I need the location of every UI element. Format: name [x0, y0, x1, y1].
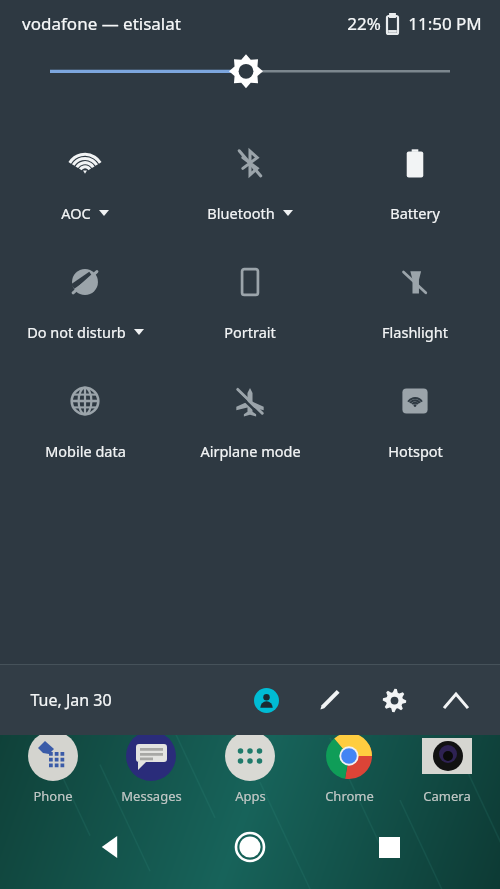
staticText: Do not disturb	[27, 322, 126, 342]
button[interactable]: Messages	[105, 731, 197, 805]
staticText: Tue, Jan 30	[30, 689, 112, 711]
staticText: 22%	[347, 12, 381, 35]
staticText: Apps	[235, 787, 266, 805]
button[interactable]: Back	[83, 819, 139, 875]
staticText: Airplane mode	[200, 441, 301, 461]
staticText: Flashlight	[382, 322, 448, 342]
button[interactable]: Settings	[372, 678, 416, 722]
staticText: 11:50 PM	[408, 12, 482, 35]
button[interactable]: Edit	[308, 678, 352, 722]
staticText: Bluetooth	[207, 203, 275, 223]
button[interactable]: Phone	[7, 731, 99, 805]
button[interactable]: Battery	[335, 140, 495, 223]
button[interactable]: Apps	[204, 731, 296, 805]
button[interactable]: Do not disturb	[5, 259, 165, 342]
staticText: Battery	[390, 203, 440, 223]
staticText: Chrome	[325, 787, 374, 805]
button[interactable]: Airplane mode	[170, 378, 330, 461]
button[interactable]: Hotspot	[335, 378, 495, 461]
staticText: vodafone — etisalat	[22, 12, 181, 35]
button[interactable]: Portrait	[170, 259, 330, 342]
button[interactable]: Recents	[361, 819, 417, 875]
button[interactable]: User	[244, 678, 288, 722]
button[interactable]: Flashlight	[335, 259, 495, 342]
button[interactable]: Chrome	[303, 731, 395, 805]
button[interactable]: Camera	[401, 731, 493, 805]
staticText: Mobile data	[45, 441, 126, 461]
staticText: Portrait	[224, 322, 276, 342]
button[interactable]: Home	[222, 819, 278, 875]
staticText: Camera	[423, 787, 471, 805]
button[interactable]: AOC	[5, 140, 165, 223]
staticText: Messages	[121, 787, 182, 805]
button[interactable]: Bluetooth	[170, 140, 330, 223]
button[interactable]: Collapse	[434, 678, 478, 722]
button[interactable]: Mobile data	[5, 378, 165, 461]
button[interactable]: Brightness	[0, 46, 500, 92]
staticText: Hotspot	[388, 441, 443, 461]
staticText: Phone	[33, 787, 73, 805]
staticText: AOC	[61, 203, 91, 223]
